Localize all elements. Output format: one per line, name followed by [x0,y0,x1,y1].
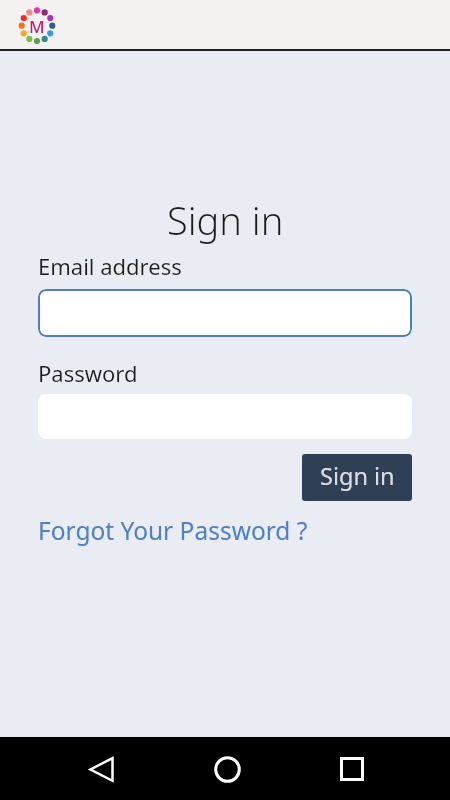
button[interactable]: M [17,5,57,45]
button[interactable] [38,289,412,337]
button[interactable] [70,738,132,800]
button[interactable] [196,738,258,800]
staticText: Email address [38,251,182,281]
staticText: Password [38,358,138,388]
staticText: Sign in [167,194,284,246]
button[interactable] [321,738,383,800]
staticText: M [29,15,45,38]
button[interactable]: Sign in [302,454,412,501]
button[interactable]: Forgot Your Password ? [38,514,308,547]
staticText: Sign in [320,460,395,492]
